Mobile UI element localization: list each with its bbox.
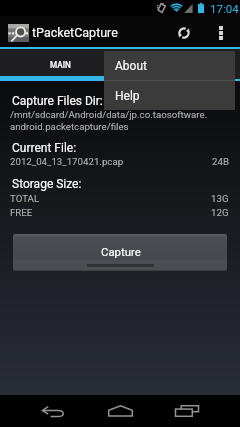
- staticText: 17:04: [210, 2, 239, 15]
- staticText: Capture Files Dir:: [12, 94, 103, 108]
- staticText: 13G: [211, 193, 229, 204]
- button[interactable]: MAIN: [0, 49, 120, 81]
- staticText: android.packetcapture/files: [10, 121, 129, 132]
- staticText: Current File:: [12, 141, 77, 155]
- staticText: FREE: [10, 207, 33, 218]
- staticText: Help: [115, 89, 140, 103]
- staticText: 12G: [211, 207, 229, 218]
- button[interactable]: Recent apps: [167, 395, 207, 427]
- staticText: About: [115, 59, 147, 73]
- button[interactable]: Refresh: [166, 17, 202, 48]
- staticText: TOTAL: [10, 193, 40, 204]
- staticText: 2012_04_13_170421.pcap: [10, 156, 124, 167]
- button[interactable]: Home: [100, 395, 140, 427]
- button[interactable]: Back: [34, 395, 74, 427]
- button[interactable]: About: [104, 51, 235, 80]
- staticText: Capture: [101, 245, 141, 258]
- staticText: /mnt/sdcard/Android/data/jp.co.taosoftwa…: [10, 109, 208, 120]
- button[interactable]: Help: [104, 81, 235, 110]
- staticText: Storage Size:: [12, 177, 82, 191]
- staticText: MAIN: [50, 60, 71, 70]
- staticText: tPacketCapture: [32, 25, 118, 40]
- button[interactable]: Capture: [13, 234, 227, 271]
- button[interactable]: More options: [207, 17, 235, 48]
- staticText: 24B: [212, 156, 229, 167]
